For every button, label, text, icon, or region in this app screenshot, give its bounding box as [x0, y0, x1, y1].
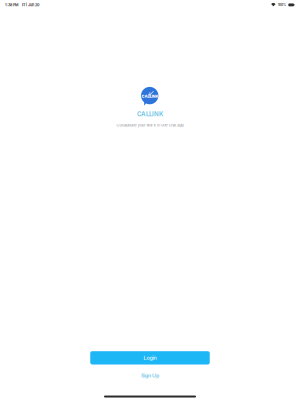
- button[interactable]: Sign Up: [135, 372, 165, 379]
- button[interactable]: Login: [90, 351, 210, 364]
- staticText: Login: [143, 355, 156, 361]
- staticText: CALLINK: [137, 110, 163, 118]
- staticText: 1:38 PM: [5, 3, 18, 7]
- staticText: Fri Jun 20: [22, 3, 39, 7]
- staticText: CALLINK: [141, 94, 158, 99]
- staticText: 100%: [278, 3, 286, 7]
- staticText: Sign Up: [141, 372, 159, 379]
- staticText: Collaborate your work in one chat app: [116, 123, 183, 127]
